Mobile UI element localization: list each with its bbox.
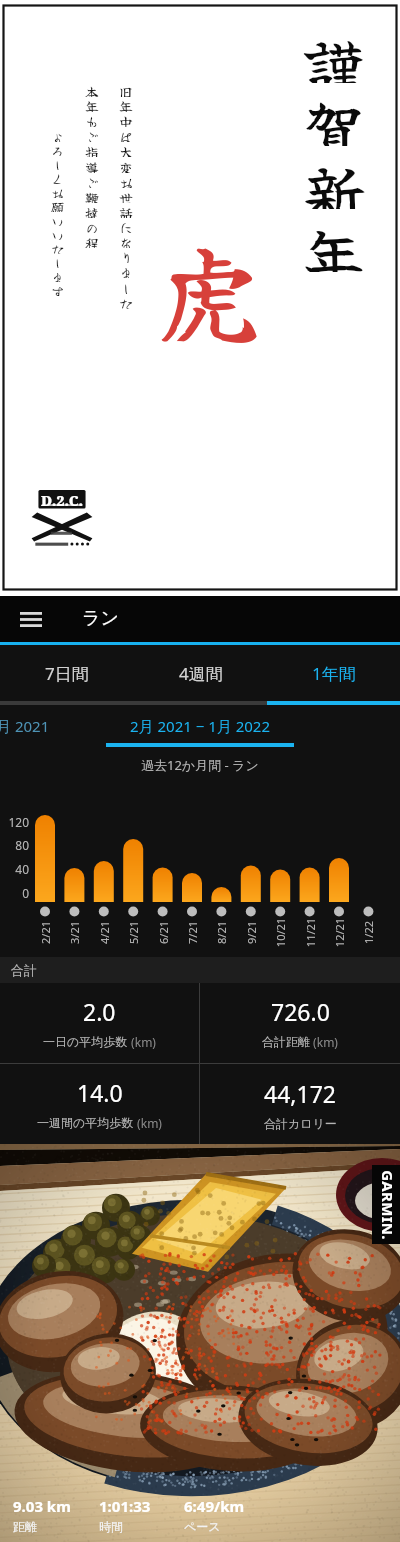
staticText: ま — [51, 268, 65, 282]
staticText: 導 — [85, 158, 99, 173]
staticText: 指 — [85, 142, 99, 157]
staticText: 44,172 — [264, 1078, 336, 1109]
staticText: 撻 — [85, 203, 99, 218]
staticText: 10/21 — [272, 910, 287, 954]
staticText: (km) — [134, 1115, 162, 1131]
staticText: ま — [119, 263, 133, 278]
staticText: 虎 — [158, 215, 263, 366]
staticText: 年 — [303, 209, 366, 272]
staticText: 世 — [119, 188, 133, 203]
button[interactable]: 44,172 — [200, 1064, 400, 1144]
staticText: 月 2021 — [0, 716, 50, 736]
staticText: 1:01:33 — [99, 1496, 151, 1516]
staticText: 7/21 — [184, 910, 199, 954]
staticText: 変 — [119, 158, 133, 173]
staticText: 一週間の平均歩数 — [37, 1115, 134, 1130]
staticText: 中 — [119, 112, 133, 127]
staticText: い — [51, 212, 65, 226]
staticText: D.2.C. — [41, 491, 84, 510]
staticText: 40 — [0, 861, 29, 877]
staticText: 合計カロリー — [264, 1116, 337, 1131]
staticText: 4/21 — [96, 910, 111, 954]
staticText: な — [119, 233, 133, 248]
staticText: 旧 — [119, 82, 133, 97]
staticText: よ — [51, 128, 65, 142]
staticText: 程 — [85, 233, 99, 248]
staticText: 話 — [119, 203, 133, 218]
staticText: ご — [85, 127, 99, 142]
staticText: 11/21 — [302, 910, 317, 954]
staticText: お — [51, 184, 65, 198]
button[interactable]: Open navigation menu — [8, 596, 54, 642]
staticText: 大 — [119, 142, 133, 157]
button[interactable]: 2月 2021 − 1月 2022 — [106, 716, 294, 747]
staticText: (km) — [128, 1034, 156, 1050]
staticText: に — [119, 218, 133, 233]
staticText: の — [85, 218, 99, 233]
staticText: 合計距離 — [262, 1034, 310, 1049]
button[interactable]: 2.0 — [0, 983, 199, 1063]
staticText: 鞭 — [85, 188, 99, 203]
staticText: 0 — [0, 885, 29, 901]
staticText: し — [51, 254, 65, 268]
staticText: 120 — [0, 814, 29, 830]
staticText: 7日間 — [45, 662, 89, 685]
staticText: た — [51, 240, 65, 254]
button[interactable]: 14.0 — [0, 1064, 199, 1144]
staticText: 一日の平均歩数 — [43, 1034, 128, 1049]
staticText: い — [51, 226, 65, 240]
staticText: 5/21 — [125, 910, 140, 954]
staticText: ラン — [82, 607, 119, 630]
staticText: 年 — [85, 97, 99, 112]
staticText: 賀 — [303, 83, 366, 146]
staticText: す — [51, 282, 65, 296]
staticText: は — [119, 127, 133, 142]
button[interactable]: 1:01:33 — [99, 1496, 151, 1534]
staticText: 3/21 — [66, 910, 81, 954]
staticText: 時間 — [99, 1519, 123, 1534]
staticText: 6:49/km — [184, 1496, 245, 1516]
staticText: 謹 — [303, 20, 366, 83]
staticText: 2/21 — [37, 910, 52, 954]
staticText: 12/21 — [331, 910, 346, 954]
staticText: ろ — [51, 142, 65, 156]
staticText: 願 — [51, 198, 65, 212]
staticText: 14.0 — [77, 1077, 123, 1108]
staticText: 9/21 — [243, 910, 258, 954]
staticText: 2月 2021 − 1月 2022 — [130, 716, 270, 736]
button[interactable]: 726.0 — [200, 983, 400, 1063]
staticText: お — [119, 173, 133, 188]
staticText: り — [119, 248, 133, 263]
button[interactable]: 4週間 — [134, 645, 267, 701]
button[interactable]: 7日間 — [0, 645, 134, 701]
staticText: (km) — [310, 1034, 338, 1050]
staticText: ご — [85, 173, 99, 188]
staticText: く — [51, 170, 65, 184]
staticText: 距離 — [13, 1519, 37, 1534]
staticText: 過去12か月間 - ラン — [141, 756, 259, 774]
staticText: 4週間 — [179, 662, 223, 685]
staticText: 2.0 — [83, 996, 116, 1027]
staticText: 80 — [0, 837, 29, 853]
staticText: GARMIN. — [375, 1165, 397, 1244]
staticText: 本 — [85, 82, 99, 97]
staticText: 1年間 — [312, 662, 356, 685]
staticText: 9.03 km — [13, 1496, 71, 1516]
staticText: 6/21 — [155, 910, 170, 954]
staticText: ペース — [184, 1519, 221, 1534]
button[interactable]: 6:49/km — [184, 1496, 245, 1534]
button[interactable]: 9.03 km — [13, 1496, 71, 1534]
staticText: 726.0 — [271, 996, 330, 1027]
button[interactable]: 1年間 — [267, 645, 400, 701]
staticText: し — [51, 156, 65, 170]
button[interactable]: GARMIN. — [372, 1165, 400, 1244]
staticText: 合計 — [11, 962, 37, 978]
staticText: 8/21 — [213, 910, 228, 954]
staticText: し — [119, 279, 133, 294]
staticText: た — [119, 294, 133, 309]
staticText: 1/22 — [360, 910, 375, 954]
staticText: 年 — [119, 97, 133, 112]
staticText: も — [85, 112, 99, 127]
staticText: 新 — [303, 146, 366, 209]
